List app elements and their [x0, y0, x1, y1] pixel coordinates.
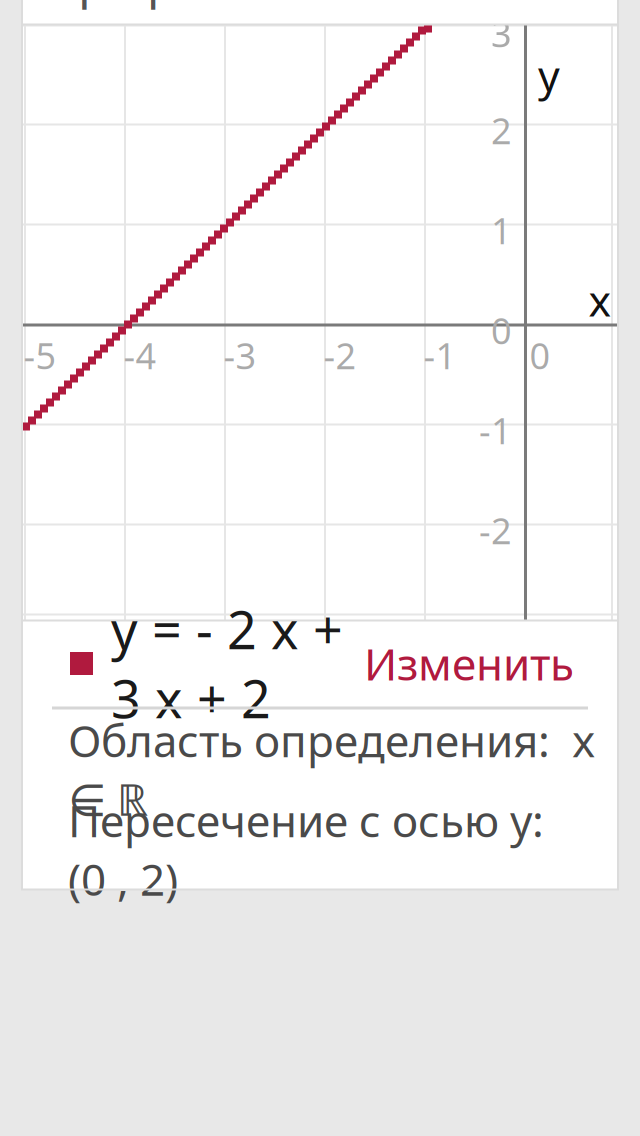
staticText: -5: [23, 331, 56, 379]
staticText: -1: [423, 331, 456, 379]
staticText: -2: [323, 331, 356, 379]
staticText: 2: [491, 106, 512, 154]
staticText: y = - 2 x + 3 x + 2: [111, 594, 343, 732]
button[interactable]: Изменить: [364, 622, 618, 705]
staticText: 1: [491, 206, 512, 254]
staticText: 0: [491, 306, 512, 354]
staticText: График: [54, 0, 228, 11]
staticText: Область определения: x ∈ ℝ: [68, 711, 595, 828]
staticText: x: [588, 271, 611, 328]
staticText: -2: [479, 506, 512, 554]
staticText: Изменить: [364, 634, 574, 693]
staticText: -1: [479, 406, 512, 454]
staticText: Пересечение с осью y: (0 , 2): [68, 791, 555, 908]
staticText: -3: [223, 331, 256, 379]
staticText: 0: [529, 331, 550, 379]
staticText: -4: [123, 331, 156, 379]
staticText: y: [538, 46, 560, 103]
staticText: 3: [491, 9, 512, 57]
